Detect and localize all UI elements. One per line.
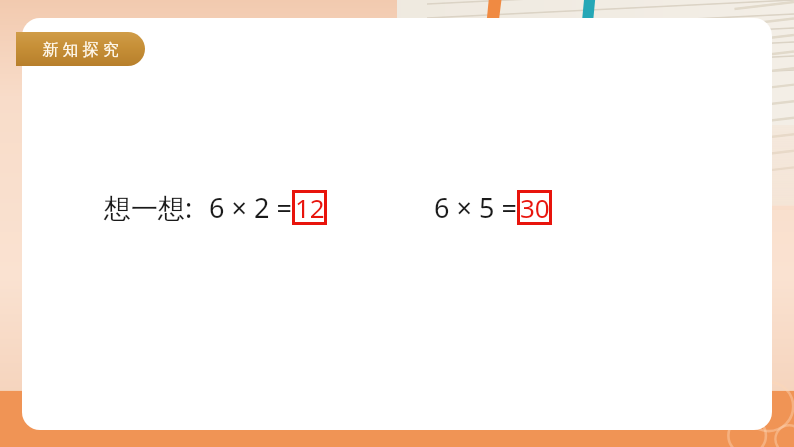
staticText: 想一想: (104, 189, 193, 226)
staticText: 新 知 探 究 (42, 38, 119, 60)
staticText: 6 × 5 = (434, 189, 517, 226)
button[interactable]: 新知探究 (16, 32, 145, 66)
staticText: 12 (295, 190, 325, 225)
staticText: 6 × 2 = (209, 189, 292, 226)
staticText: 30 (520, 190, 550, 225)
